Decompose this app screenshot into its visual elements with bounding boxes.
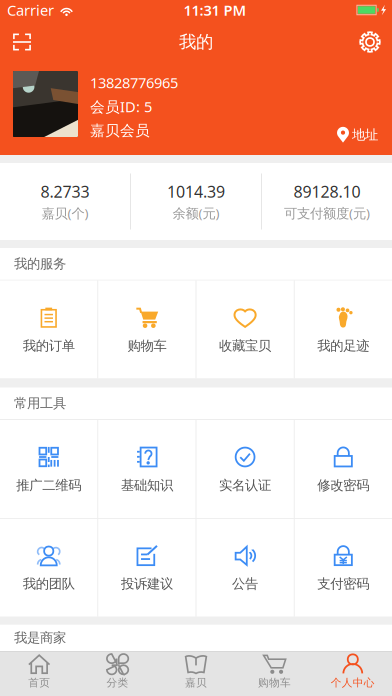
- staticText: Carrier: [7, 0, 54, 20]
- button[interactable]: 支付密码: [294, 519, 392, 617]
- staticText: 地址: [352, 127, 378, 143]
- staticText: 我的: [179, 31, 213, 53]
- button[interactable]: Scan QR code: [0, 20, 44, 64]
- staticText: 推广二维码: [16, 477, 81, 493]
- button[interactable]: 个人中心: [314, 651, 392, 696]
- staticText: 嘉贝(个): [41, 204, 88, 222]
- button[interactable]: 我的订单: [0, 280, 97, 378]
- staticText: 实名认证: [219, 477, 271, 493]
- staticText: 会员ID: 5: [90, 97, 152, 116]
- button[interactable]: 基础知识: [98, 420, 196, 518]
- staticText: 我是商家: [14, 630, 66, 646]
- staticText: 我的服务: [14, 256, 66, 272]
- staticText: 1014.39: [167, 181, 225, 202]
- staticText: 收藏宝贝: [219, 337, 271, 354]
- staticText: 我的订单: [23, 337, 75, 354]
- button[interactable]: 地址: [329, 121, 386, 149]
- staticText: 13828776965: [90, 73, 178, 92]
- staticText: 我的团队: [23, 576, 75, 592]
- staticText: 首页: [28, 676, 50, 689]
- staticText: 嘉贝会员: [90, 121, 150, 139]
- button[interactable]: 投诉建议: [98, 519, 196, 617]
- button[interactable]: Settings: [348, 20, 392, 64]
- button[interactable]: 我的足迹: [294, 280, 392, 378]
- staticText: 个人中心: [331, 676, 375, 689]
- staticText: 修改密码: [317, 477, 369, 493]
- staticText: 8.2733: [40, 181, 89, 202]
- button[interactable]: 修改密码: [294, 420, 392, 518]
- staticText: 购物车: [127, 337, 166, 354]
- staticText: 余额(元): [172, 204, 219, 222]
- button[interactable]: 收藏宝贝: [196, 280, 294, 378]
- button[interactable]: 公告: [196, 519, 294, 617]
- staticText: 支付密码: [317, 576, 369, 592]
- button[interactable]: 首页: [0, 651, 78, 696]
- staticText: 可支付额度(元): [284, 204, 370, 222]
- staticText: 11:31 PM: [183, 0, 246, 20]
- staticText: 分类: [107, 676, 129, 689]
- staticText: 购物车: [258, 676, 291, 689]
- button[interactable]: 嘉贝: [157, 651, 235, 696]
- staticText: 嘉贝: [185, 676, 207, 689]
- staticText: 公告: [232, 576, 258, 592]
- button[interactable]: 推广二维码: [0, 420, 97, 518]
- staticText: 基础知识: [121, 477, 173, 493]
- button[interactable]: 购物车: [235, 651, 314, 696]
- staticText: 投诉建议: [121, 576, 173, 592]
- button[interactable]: 我的团队: [0, 519, 97, 617]
- staticText: 89128.10: [293, 181, 360, 202]
- staticText: 常用工具: [14, 395, 66, 412]
- button[interactable]: 购物车: [98, 280, 196, 378]
- button[interactable]: 分类: [78, 651, 157, 696]
- staticText: 我的足迹: [317, 337, 369, 354]
- button[interactable]: 实名认证: [196, 420, 294, 518]
